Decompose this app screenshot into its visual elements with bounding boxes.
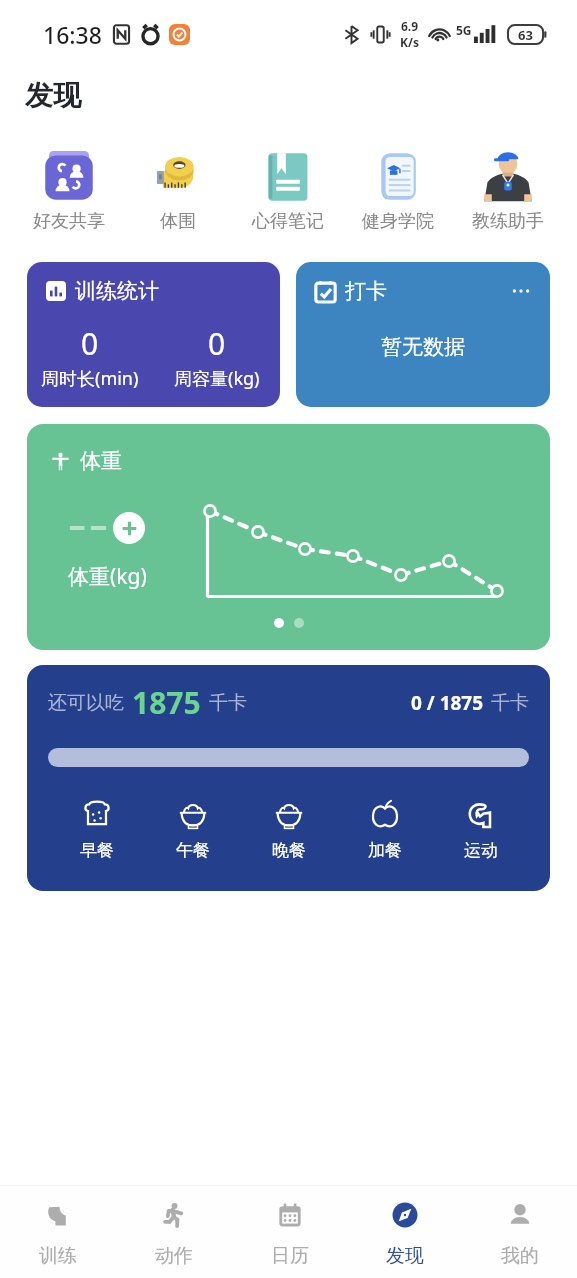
staticText: 早餐 xyxy=(80,840,114,861)
staticText: 运动 xyxy=(464,840,498,861)
button[interactable]: 体围 xyxy=(123,146,233,237)
staticText: 发现 xyxy=(25,78,81,113)
staticText: 千卡 xyxy=(491,691,529,715)
button[interactable]: 早餐 xyxy=(48,799,145,861)
staticText: 训练 xyxy=(39,1244,77,1268)
staticText: 心得笔记 xyxy=(252,210,324,233)
staticText: 加餐 xyxy=(368,840,402,861)
staticText: 体重(kg) xyxy=(68,562,147,591)
button[interactable]: 教练助手 xyxy=(453,146,563,237)
staticText: 打卡 xyxy=(345,278,387,304)
staticText: 体围 xyxy=(160,210,196,233)
button[interactable]: Add weight xyxy=(113,512,145,544)
button[interactable]: More xyxy=(509,279,533,303)
staticText: 周时长(min) xyxy=(41,366,139,391)
button[interactable]: 午餐 xyxy=(145,799,241,861)
staticText: K/s xyxy=(400,34,419,50)
staticText: 0 / 1875 xyxy=(411,690,484,716)
staticText: 0 xyxy=(81,323,99,364)
staticText: 发现 xyxy=(386,1244,424,1268)
staticText: 1875 xyxy=(132,682,201,723)
staticText: 0 xyxy=(208,323,226,364)
staticText: 16:38 xyxy=(43,19,102,50)
staticText: 体重 xyxy=(80,448,122,474)
staticText: 晚餐 xyxy=(272,840,306,861)
staticText: 训练统计 xyxy=(75,278,159,304)
staticText: 5G xyxy=(456,22,472,38)
staticText: 63 xyxy=(518,26,533,44)
staticText: 还可以吃 xyxy=(48,691,124,715)
button[interactable]: 心得笔记 xyxy=(233,146,343,237)
staticText: 教练助手 xyxy=(472,210,544,233)
staticText: 我的 xyxy=(501,1244,539,1268)
button[interactable]: 我的 xyxy=(462,1186,577,1278)
button[interactable]: 发现 xyxy=(347,1186,462,1278)
button[interactable]: 打卡 xyxy=(296,262,550,407)
button[interactable]: 动作 xyxy=(116,1186,232,1278)
button[interactable]: 训练 xyxy=(0,1186,116,1278)
button[interactable]: 好友共享 xyxy=(14,146,123,237)
staticText: 周容量(kg) xyxy=(174,366,260,391)
staticText: 好友共享 xyxy=(33,210,105,233)
button[interactable]: 训练统计 xyxy=(27,262,280,407)
button[interactable]: 还可以吃 xyxy=(27,665,550,891)
button[interactable]: 运动 xyxy=(433,799,529,861)
button[interactable]: 晚餐 xyxy=(241,799,337,861)
button[interactable]: 日历 xyxy=(232,1186,347,1278)
button[interactable]: 加餐 xyxy=(337,799,433,861)
staticText: 暂无数据 xyxy=(381,334,465,360)
button[interactable]: 健身学院 xyxy=(343,146,453,237)
button[interactable]: 体重 xyxy=(27,424,550,650)
staticText: 日历 xyxy=(271,1244,309,1268)
staticText: 动作 xyxy=(155,1244,193,1268)
staticText: 午餐 xyxy=(176,840,210,861)
staticText: 6.9 xyxy=(401,18,419,34)
staticText: 千卡 xyxy=(209,691,247,715)
staticText: 健身学院 xyxy=(362,210,434,233)
